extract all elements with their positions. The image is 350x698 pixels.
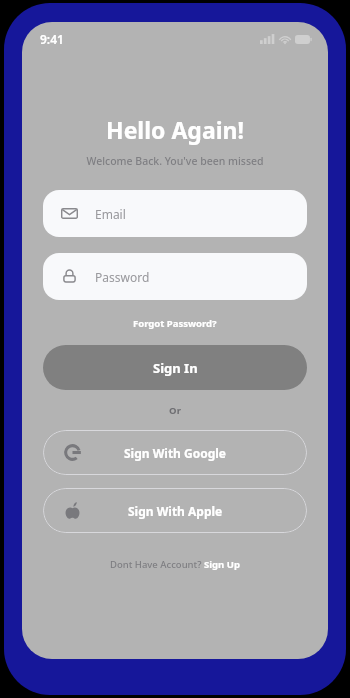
staticText: Or	[22, 404, 328, 417]
button[interactable]: Sign In	[43, 345, 307, 390]
staticText: Sign In	[153, 359, 198, 377]
staticText: Hello Again!	[22, 114, 328, 145]
staticText: Sign With Apple	[128, 503, 223, 519]
button[interactable]: Email	[43, 190, 307, 237]
button[interactable]: Google	[43, 430, 307, 475]
other: Apple	[63, 501, 82, 520]
other: Email	[61, 205, 78, 222]
staticText: Sign With Google	[124, 445, 227, 461]
staticText: Welcome Back. You've been missed	[22, 154, 328, 168]
staticText: Sign Up	[204, 558, 240, 571]
staticText: 9:41	[40, 31, 64, 47]
button[interactable]: Dont Have Account?	[106, 556, 244, 573]
staticText: Forgot Password?	[133, 317, 217, 330]
staticText: Dont Have Account?	[110, 558, 204, 571]
staticText: Password	[95, 269, 150, 285]
staticText: Email	[95, 206, 126, 222]
other: Password	[61, 268, 78, 285]
button[interactable]: Forgot Password?	[129, 315, 221, 332]
button[interactable]: Apple	[43, 488, 307, 533]
other: Google	[63, 443, 82, 462]
button[interactable]: Password	[43, 253, 307, 300]
